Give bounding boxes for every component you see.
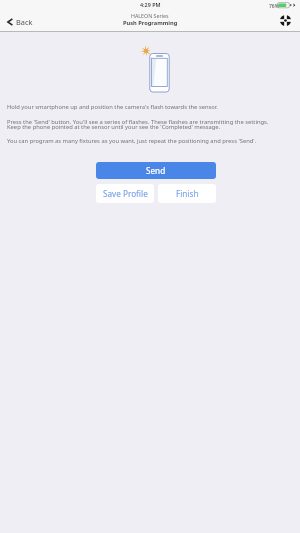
staticText: Send [146, 165, 166, 176]
staticText: Hold your smartphone up and position the… [7, 103, 218, 111]
staticText: Press the 'Send' button. You'll see a se… [7, 118, 269, 131]
staticText: Back [16, 17, 33, 27]
staticText: Push Programming [123, 19, 178, 27]
button[interactable]: Save Profile [96, 184, 154, 203]
staticText: HALEON Series [131, 12, 169, 19]
button[interactable]: Finish [158, 184, 216, 203]
staticText: Finish [176, 188, 199, 199]
button[interactable]: Send [96, 162, 216, 179]
staticText: 76% [269, 3, 279, 10]
staticText: Save Profile [103, 188, 148, 199]
button[interactable]: Options [280, 15, 291, 26]
staticText: You can program as many fixtures as you … [7, 137, 257, 145]
button[interactable]: Back [0, 14, 42, 30]
staticText: 4:29 PM [140, 1, 161, 8]
